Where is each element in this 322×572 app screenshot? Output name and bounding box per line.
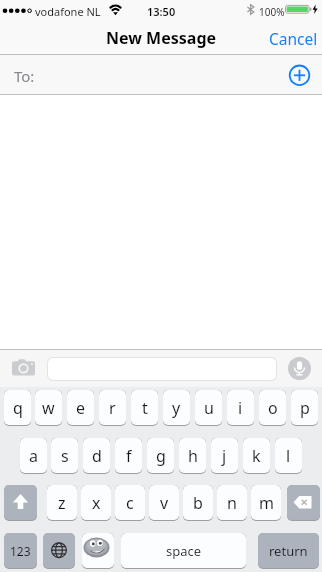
- button[interactable]: [43, 533, 75, 569]
- staticText: s: [61, 445, 69, 467]
- staticText: h: [188, 445, 198, 467]
- staticText: y: [172, 397, 181, 419]
- staticText: d: [92, 445, 102, 467]
- staticText: return: [269, 542, 308, 560]
- button[interactable]: p: [291, 390, 318, 426]
- staticText: 13:50: [147, 4, 176, 19]
- staticText: c: [126, 492, 134, 514]
- button[interactable]: j: [211, 438, 238, 474]
- button[interactable]: m: [251, 485, 281, 521]
- staticText: r: [109, 397, 116, 419]
- staticText: v: [160, 492, 169, 514]
- button[interactable]: [287, 485, 320, 521]
- button[interactable]: [287, 63, 312, 88]
- button[interactable]: z: [47, 485, 77, 521]
- button[interactable]: b: [183, 485, 213, 521]
- button[interactable]: v: [149, 485, 179, 521]
- button[interactable]: u: [195, 390, 222, 426]
- button[interactable]: o: [259, 390, 286, 426]
- button[interactable]: [47, 357, 277, 381]
- button[interactable]: space: [121, 533, 246, 569]
- button[interactable]: y: [163, 390, 190, 426]
- staticText: vodafone NL: [35, 4, 101, 19]
- button[interactable]: g: [147, 438, 174, 474]
- staticText: Cancel: [269, 28, 318, 49]
- staticText: e: [76, 397, 86, 419]
- staticText: 123: [10, 543, 31, 559]
- staticText: m: [259, 492, 274, 514]
- button[interactable]: f: [115, 438, 142, 474]
- staticText: f: [126, 445, 132, 467]
- button[interactable]: r: [99, 390, 126, 426]
- button[interactable]: return: [258, 533, 319, 569]
- staticText: u: [204, 397, 214, 419]
- staticText: To:: [14, 66, 35, 86]
- button[interactable]: n: [217, 485, 247, 521]
- staticText: g: [156, 445, 166, 467]
- staticText: q: [13, 397, 23, 419]
- button[interactable]: k: [243, 438, 270, 474]
- staticText: l: [286, 445, 291, 467]
- button[interactable]: 123: [4, 533, 37, 569]
- button[interactable]: a: [20, 438, 47, 474]
- staticText: New Message: [106, 27, 217, 49]
- button[interactable]: e: [67, 390, 94, 426]
- button[interactable]: x: [81, 485, 111, 521]
- staticText: t: [142, 397, 148, 419]
- staticText: 100%: [259, 5, 285, 19]
- staticText: n: [227, 492, 237, 514]
- button[interactable]: q: [4, 390, 31, 426]
- button[interactable]: d: [83, 438, 110, 474]
- button[interactable]: t: [131, 390, 158, 426]
- button[interactable]: Cancel: [258, 24, 318, 52]
- button[interactable]: i: [227, 390, 254, 426]
- button[interactable]: h: [179, 438, 206, 474]
- staticText: z: [58, 492, 66, 514]
- button[interactable]: [288, 357, 311, 380]
- button[interactable]: l: [275, 438, 302, 474]
- staticText: x: [92, 492, 101, 514]
- staticText: p: [300, 397, 310, 419]
- button[interactable]: [0, 55, 322, 94]
- button[interactable]: c: [115, 485, 145, 521]
- staticText: o: [268, 397, 278, 419]
- staticText: space: [166, 542, 202, 560]
- button[interactable]: [82, 533, 114, 569]
- button[interactable]: s: [51, 438, 78, 474]
- staticText: a: [29, 445, 38, 467]
- button[interactable]: w: [35, 390, 62, 426]
- staticText: i: [238, 397, 243, 419]
- staticText: j: [222, 445, 227, 467]
- button[interactable]: [8, 355, 40, 381]
- staticText: k: [252, 445, 261, 467]
- button[interactable]: [4, 485, 37, 521]
- staticText: w: [42, 397, 55, 419]
- staticText: b: [193, 492, 203, 514]
